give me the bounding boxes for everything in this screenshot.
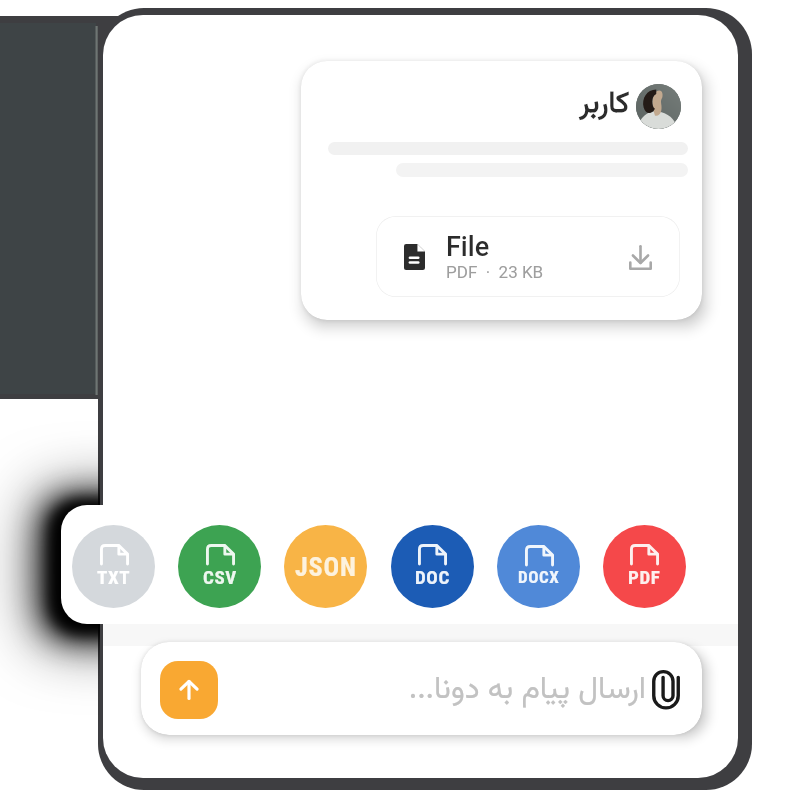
staticText: کاربر — [470, 82, 629, 127]
staticText: DOCX — [518, 567, 560, 587]
button[interactable]: کاربر — [301, 61, 702, 320]
button[interactable]: JSON — [284, 525, 367, 608]
button[interactable]: DOC — [391, 525, 474, 608]
button[interactable]: Send — [141, 642, 702, 735]
button[interactable]: TXT — [72, 525, 155, 608]
staticText: DOC — [415, 566, 450, 588]
button[interactable]: Download — [629, 245, 652, 270]
staticText: PDF — [628, 566, 661, 588]
staticText: File — [446, 231, 490, 263]
button[interactable]: DOCX — [497, 525, 580, 608]
button[interactable]: Send — [160, 661, 218, 719]
button[interactable]: Attach file — [652, 669, 680, 709]
staticText: PDF · 23 KB — [446, 262, 544, 282]
staticText: TXT — [97, 566, 131, 588]
staticText: JSON — [295, 552, 357, 582]
button[interactable]: File — [376, 216, 680, 297]
button[interactable]: CSV — [178, 525, 261, 608]
staticText: CSV — [203, 566, 237, 588]
button[interactable]: PDF — [603, 525, 686, 608]
staticText: ‫ارسال پیام به دونا...‬ — [300, 666, 646, 714]
